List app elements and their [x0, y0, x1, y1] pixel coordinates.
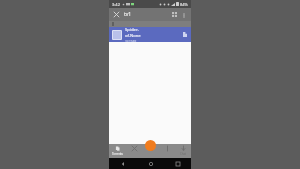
button[interactable]: Add torrent	[145, 140, 156, 151]
staticText: Spider-Man.Far.From.Home.S	[125, 27, 179, 33]
staticText: tv1	[124, 11, 132, 18]
button[interactable]	[126, 144, 143, 158]
staticText: Torrents	[112, 152, 123, 156]
button[interactable]: Torrents	[109, 144, 126, 158]
button[interactable]: Home	[137, 158, 164, 169]
button[interactable]	[159, 144, 175, 158]
button[interactable]: Back	[109, 158, 137, 169]
button[interactable]: Chat	[175, 144, 191, 158]
button[interactable]	[143, 144, 159, 158]
button[interactable]: Spider-Man.Far.From.Home.S	[109, 27, 191, 42]
button[interactable]: File type	[181, 31, 188, 38]
staticText: 84%	[180, 2, 188, 7]
button[interactable]: Grid view	[170, 10, 179, 19]
button[interactable]: Close search	[112, 10, 121, 19]
staticText: 342 MB	[125, 40, 137, 42]
button[interactable]: Recent apps	[164, 158, 191, 169]
staticText: 3:42	[112, 2, 120, 7]
button[interactable]: tv1	[124, 11, 170, 18]
staticText: of.None	[125, 33, 141, 39]
staticText: Chat	[180, 152, 187, 156]
button[interactable]: More options	[180, 11, 188, 19]
